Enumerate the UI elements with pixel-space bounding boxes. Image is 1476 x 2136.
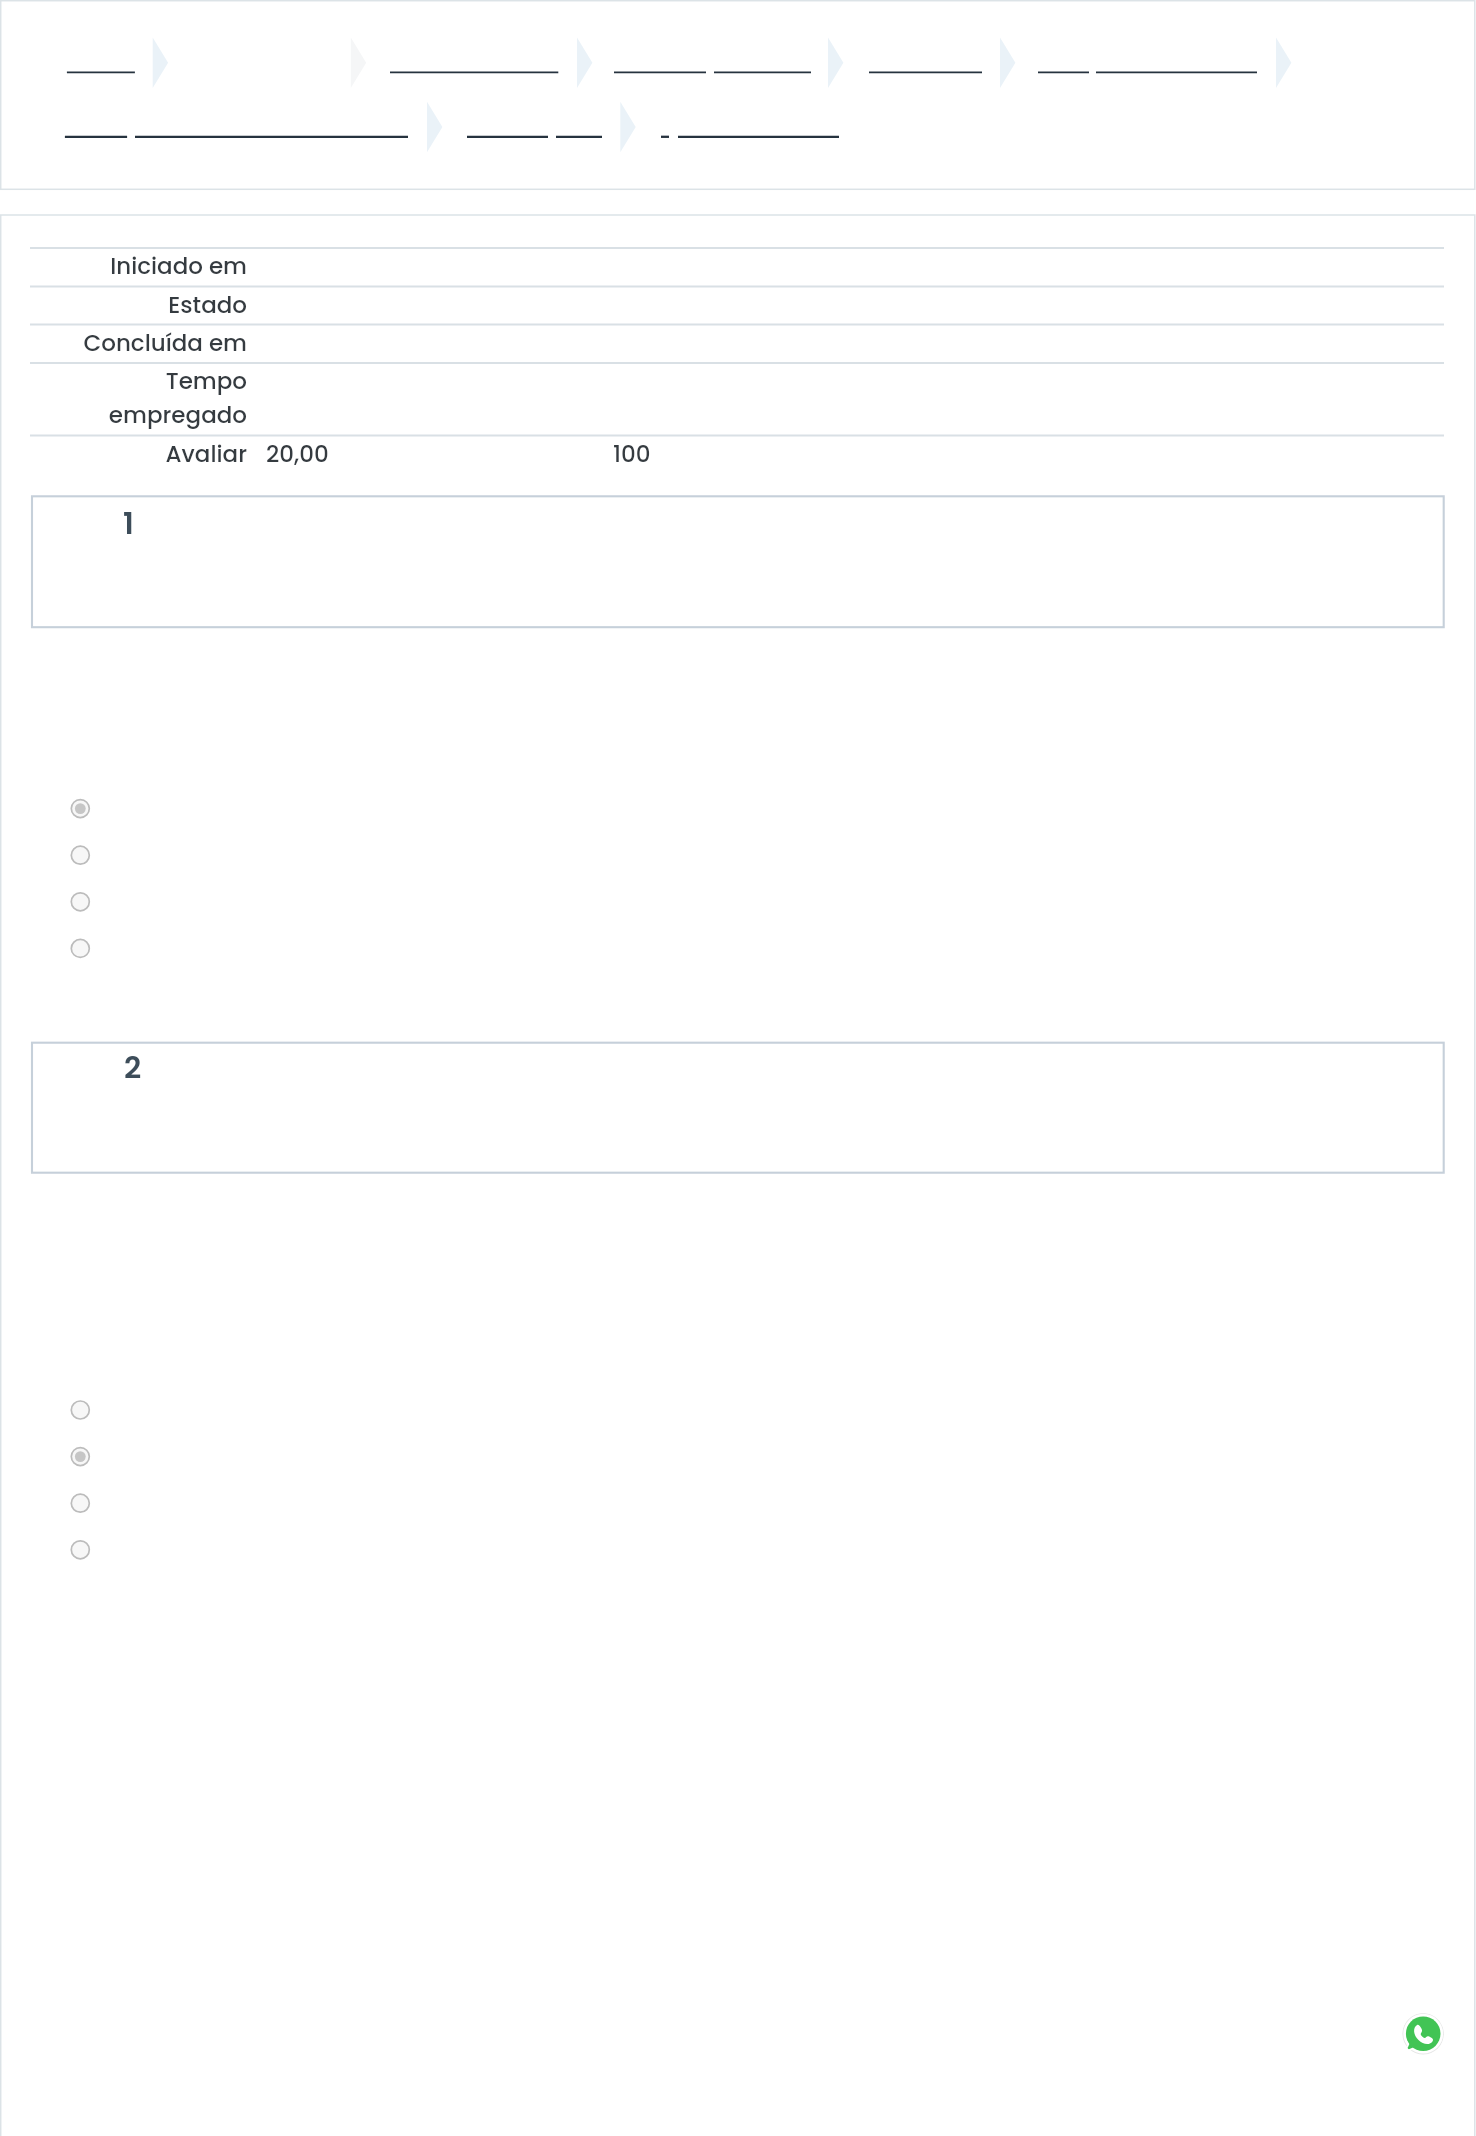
staticText: Avaliar bbox=[0, 438, 247, 470]
staticText: Tempo bbox=[0, 365, 247, 397]
button[interactable]: Navegação bbox=[463, 119, 606, 153]
button[interactable]: Navegação bbox=[60, 119, 412, 153]
button[interactable]: Navegação bbox=[865, 55, 986, 89]
staticText: 2 bbox=[124, 1047, 142, 1089]
staticText: 100 bbox=[613, 438, 651, 470]
staticText: Estado bbox=[0, 289, 247, 321]
staticText: Iniciado em bbox=[0, 250, 247, 282]
button[interactable]: Navegação bbox=[1034, 55, 1261, 89]
button[interactable]: Navegação bbox=[610, 55, 815, 89]
staticText: Concluída em bbox=[0, 327, 247, 359]
button[interactable]: Navegação bbox=[657, 119, 843, 153]
staticText: 20,00 bbox=[266, 438, 329, 470]
button[interactable]: Conversar no WhatsApp bbox=[1402, 2013, 1444, 2055]
staticText: empregado bbox=[0, 399, 247, 431]
button[interactable]: Questão bbox=[28, 493, 1448, 632]
button[interactable]: Opção selecionada bbox=[64, 1439, 1424, 1473]
button[interactable]: Questão bbox=[28, 1039, 1448, 1177]
button[interactable]: Navegação bbox=[386, 55, 563, 89]
button[interactable]: Opção selecionada bbox=[64, 791, 1424, 825]
staticText: 1 bbox=[123, 503, 134, 545]
button[interactable]: Navegação bbox=[62, 55, 139, 89]
